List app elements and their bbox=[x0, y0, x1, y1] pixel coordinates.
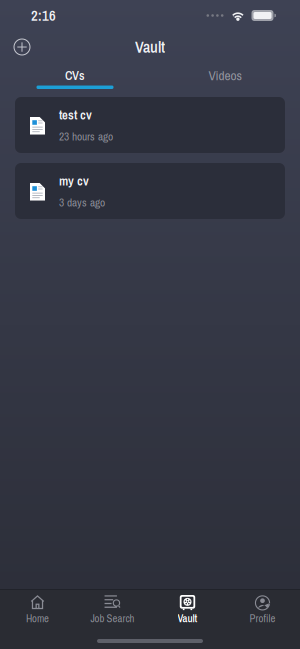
button[interactable]: Profile bbox=[225, 590, 300, 633]
staticText: 2:16 bbox=[31, 6, 56, 25]
button[interactable]: Job Search bbox=[75, 590, 150, 633]
button[interactable]: CVs bbox=[0, 63, 150, 93]
staticText: CVs bbox=[65, 67, 85, 84]
staticText: Home bbox=[26, 611, 49, 626]
staticText: my cv bbox=[59, 172, 89, 190]
staticText: 3 days ago bbox=[59, 195, 105, 210]
staticText: Vault bbox=[135, 36, 165, 58]
button[interactable]: test cv bbox=[15, 97, 285, 153]
staticText: Job Search bbox=[90, 611, 134, 626]
staticText: Videos bbox=[208, 66, 241, 84]
button[interactable]: Vault bbox=[150, 590, 225, 633]
staticText: 23 hours ago bbox=[59, 129, 113, 144]
button[interactable]: Add bbox=[8, 33, 36, 61]
button[interactable]: Videos bbox=[150, 63, 300, 93]
staticText: test cv bbox=[59, 106, 92, 124]
staticText: Profile bbox=[249, 611, 275, 626]
button[interactable]: my cv bbox=[15, 163, 285, 219]
staticText: Vault bbox=[177, 611, 197, 626]
button[interactable]: Home bbox=[0, 590, 75, 633]
